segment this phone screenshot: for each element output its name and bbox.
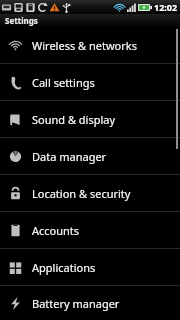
button[interactable]: Applications [0, 249, 180, 285]
button[interactable]: Accounts [0, 212, 180, 248]
button[interactable]: Battery manager [0, 286, 180, 320]
button[interactable]: Wireless & networks [0, 27, 180, 63]
staticText: 12:02 [154, 1, 178, 13]
button[interactable]: Sound & display [0, 101, 180, 137]
staticText: Call settings [32, 75, 95, 90]
staticText: Applications [32, 260, 96, 275]
staticText: Sound & display [32, 112, 116, 127]
staticText: Accounts [32, 223, 80, 238]
button[interactable]: Call settings [0, 64, 180, 100]
button[interactable]: Location & security [0, 175, 180, 211]
staticText: Battery manager [32, 296, 120, 311]
button[interactable]: Data manager [0, 138, 180, 174]
staticText: Settings [5, 15, 38, 26]
staticText: Location & security [32, 186, 131, 201]
staticText: Data manager [32, 149, 107, 164]
staticText: Wireless & networks [32, 38, 137, 53]
